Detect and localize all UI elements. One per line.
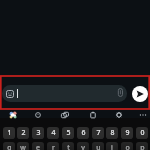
button[interactable]: 3	[32, 127, 44, 139]
staticText: t	[67, 143, 70, 150]
button[interactable]: p	[136, 142, 148, 150]
button[interactable]: 2	[17, 127, 29, 139]
button[interactable]: 4	[47, 127, 59, 139]
button[interactable]: More options	[136, 108, 150, 122]
staticText: 3	[36, 128, 41, 138]
button[interactable]: Emoji	[31, 108, 45, 122]
button[interactable]: e	[32, 142, 44, 150]
button[interactable]: 9	[121, 127, 133, 139]
staticText: 7	[96, 128, 101, 138]
button[interactable]: r	[47, 142, 59, 150]
staticText: 9	[125, 128, 130, 138]
button[interactable]: q	[3, 142, 15, 150]
button[interactable]: 1	[3, 127, 15, 139]
button[interactable]: Assistant	[6, 108, 20, 122]
staticText: i	[111, 143, 113, 150]
staticText: 5	[66, 128, 71, 138]
button[interactable]: 7	[92, 127, 104, 139]
button[interactable]: 5	[62, 127, 74, 139]
staticText: 0	[140, 128, 145, 138]
button[interactable]: Clipboard	[86, 108, 100, 122]
button[interactable]: t	[62, 142, 74, 150]
button[interactable]: 0	[136, 127, 148, 139]
button[interactable]: Attach file	[113, 85, 127, 99]
staticText: 4	[51, 128, 56, 138]
staticText: 1	[7, 128, 12, 138]
staticText: q	[7, 143, 12, 150]
button[interactable]: 6	[77, 127, 89, 139]
staticText: w	[20, 143, 26, 150]
button[interactable]: o	[121, 142, 133, 150]
button[interactable]: w	[17, 142, 29, 150]
staticText: 6	[81, 128, 86, 138]
button[interactable]: 8	[106, 127, 118, 139]
staticText: p	[140, 143, 145, 150]
button[interactable]: Send	[132, 86, 148, 102]
staticText: r	[52, 143, 55, 150]
staticText: 8	[110, 128, 115, 138]
button[interactable]: u	[92, 142, 104, 150]
staticText: e	[36, 143, 40, 150]
staticText: o	[125, 143, 130, 150]
staticText: 2	[21, 128, 26, 138]
staticText: y	[81, 143, 85, 150]
button[interactable]	[2, 85, 127, 102]
button[interactable]: i	[106, 142, 118, 150]
button[interactable]: y	[77, 142, 89, 150]
button[interactable]: GIF	[58, 108, 72, 122]
button[interactable]: Settings	[112, 108, 126, 122]
staticText: u	[96, 143, 101, 150]
